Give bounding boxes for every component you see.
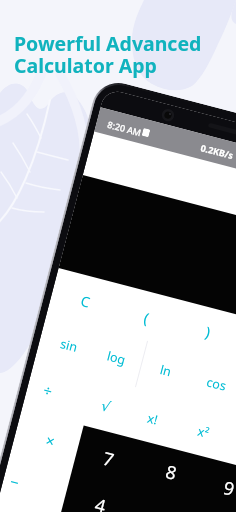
button[interactable]: x! — [124, 391, 181, 446]
button[interactable]: 8 — [142, 444, 199, 499]
staticText: log — [105, 347, 128, 368]
staticText: cos — [205, 373, 228, 395]
staticText: 9 — [220, 475, 236, 502]
staticText: 8 — [163, 459, 180, 486]
button[interactable]: ( — [117, 290, 175, 345]
button[interactable]: cos — [188, 356, 236, 411]
staticText: x² — [196, 423, 211, 442]
staticText: C — [79, 291, 92, 312]
button[interactable]: x² — [174, 404, 232, 459]
button[interactable]: ln — [136, 343, 194, 397]
button[interactable]: × — [21, 413, 79, 468]
button[interactable]: 4 — [71, 478, 129, 512]
button[interactable]: ) — [179, 304, 236, 359]
button[interactable]: √ — [76, 379, 134, 434]
button[interactable]: C — [56, 273, 114, 328]
button[interactable]: ÷ — [19, 363, 76, 417]
staticText: Powerful Advanced Calculator App — [14, 30, 202, 79]
staticText: ( — [141, 307, 151, 328]
staticText: sin — [58, 335, 79, 356]
button[interactable]: 9 — [200, 461, 236, 512]
staticText: ln — [158, 361, 173, 380]
button[interactable]: log — [87, 330, 145, 385]
staticText: 8:20 AM — [106, 118, 143, 138]
staticText: 7 — [100, 446, 117, 473]
staticText: ) — [203, 321, 213, 342]
staticText: x! — [145, 409, 159, 428]
staticText: × — [43, 430, 57, 451]
staticText: √ — [99, 397, 112, 415]
staticText: ÷ — [41, 379, 55, 401]
staticText: 4 — [92, 492, 109, 512]
button[interactable]: 7 — [79, 431, 137, 486]
button[interactable]: − — [0, 454, 43, 509]
staticText: 0.2KB/s — [199, 141, 235, 161]
button[interactable]: sin — [40, 318, 97, 372]
staticText: − — [8, 471, 22, 493]
